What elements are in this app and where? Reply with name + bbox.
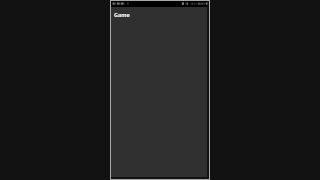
staticText: Game	[114, 11, 130, 18]
button[interactable]: Game	[111, 7, 207, 27]
